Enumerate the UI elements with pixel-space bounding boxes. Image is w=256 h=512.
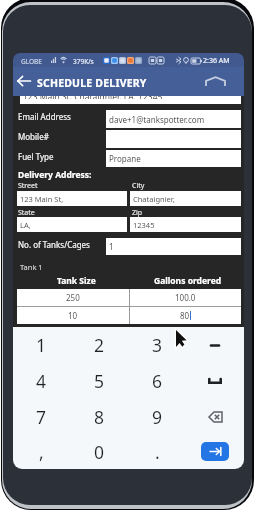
staticText: 4 bbox=[36, 369, 47, 393]
staticText: SCHEDULE DELIVERY bbox=[37, 76, 147, 90]
staticText: Propane bbox=[109, 153, 141, 164]
button[interactable]: , bbox=[13, 435, 70, 469]
staticText: Zip bbox=[132, 208, 143, 218]
staticText: 9 bbox=[152, 405, 163, 429]
button[interactable]: 0 bbox=[70, 435, 128, 469]
button[interactable]: Email Address bbox=[13, 106, 244, 127]
button[interactable]: 5 bbox=[70, 363, 128, 399]
button[interactable]: Mobile# bbox=[13, 126, 244, 147]
button[interactable]: No. of Tanks/Cages bbox=[13, 234, 244, 255]
button[interactable]: Home bbox=[201, 70, 229, 92]
staticText: . bbox=[155, 440, 160, 464]
button[interactable]: 9 bbox=[128, 399, 186, 435]
button[interactable]: space bbox=[186, 363, 244, 399]
button[interactable] bbox=[201, 442, 229, 461]
staticText: Email Address bbox=[18, 111, 71, 122]
button[interactable]: Back bbox=[13, 71, 36, 91]
staticText: dave+1@tankspotter.com bbox=[109, 114, 205, 125]
staticText: State bbox=[18, 208, 35, 218]
staticText: 8 bbox=[94, 405, 105, 429]
staticText: 100.0 bbox=[175, 292, 196, 303]
button[interactable]: 3 bbox=[128, 327, 186, 363]
staticText: 123 Main St, bbox=[20, 194, 64, 204]
staticText: 80 bbox=[180, 310, 190, 321]
staticText: 1 bbox=[36, 333, 47, 357]
staticText: No. of Tanks/Cages bbox=[18, 239, 90, 250]
button[interactable]: 7 bbox=[13, 399, 70, 435]
button[interactable]: 12345 bbox=[130, 217, 241, 232]
button[interactable]: backspace bbox=[186, 399, 244, 435]
staticText: Fuel Type bbox=[18, 151, 54, 162]
staticText: GLOBE bbox=[21, 57, 42, 66]
button[interactable]: 2 bbox=[70, 327, 128, 363]
staticText: 1 bbox=[109, 241, 114, 252]
button[interactable]: Fuel Type bbox=[13, 146, 244, 166]
staticText: 2:36 AM bbox=[203, 56, 230, 66]
button[interactable]: . bbox=[128, 435, 186, 469]
staticText: 3 bbox=[152, 333, 163, 357]
staticText: 5 bbox=[94, 369, 105, 393]
staticText: Gallons ordered bbox=[154, 275, 222, 287]
staticText: Mobile# bbox=[18, 131, 49, 142]
button[interactable]: LA, bbox=[17, 217, 127, 232]
staticText: City bbox=[132, 181, 145, 191]
staticText: 123 Main St, Chataignier, LA, 12345 bbox=[23, 96, 163, 99]
button[interactable]: Chataignier, bbox=[130, 191, 241, 206]
staticText: 7 bbox=[36, 405, 47, 429]
button[interactable]: enter bbox=[186, 435, 244, 469]
staticText: 379K/s bbox=[73, 57, 94, 66]
staticText: Chataignier, bbox=[133, 194, 175, 204]
button[interactable]: 123 Main St, bbox=[17, 191, 127, 206]
staticText: Tank 1 bbox=[20, 262, 43, 272]
staticText: 250 bbox=[66, 292, 80, 303]
button[interactable]: 6 bbox=[128, 363, 186, 399]
button[interactable]: 1 bbox=[13, 327, 70, 363]
staticText: 6 bbox=[152, 369, 163, 393]
staticText: , bbox=[39, 440, 44, 464]
staticText: 12345 bbox=[133, 220, 155, 230]
staticText: 2 bbox=[94, 333, 105, 357]
button[interactable]: 4 bbox=[13, 363, 70, 399]
staticText: Street bbox=[18, 181, 38, 191]
staticText: 10 bbox=[68, 310, 78, 321]
staticText: Tank Size bbox=[57, 275, 96, 287]
button[interactable]: 8 bbox=[70, 399, 128, 435]
button[interactable]: minus bbox=[186, 327, 244, 363]
staticText: LA, bbox=[20, 220, 31, 230]
staticText: Delivery Address: bbox=[18, 169, 92, 181]
staticText: 0 bbox=[94, 440, 105, 464]
